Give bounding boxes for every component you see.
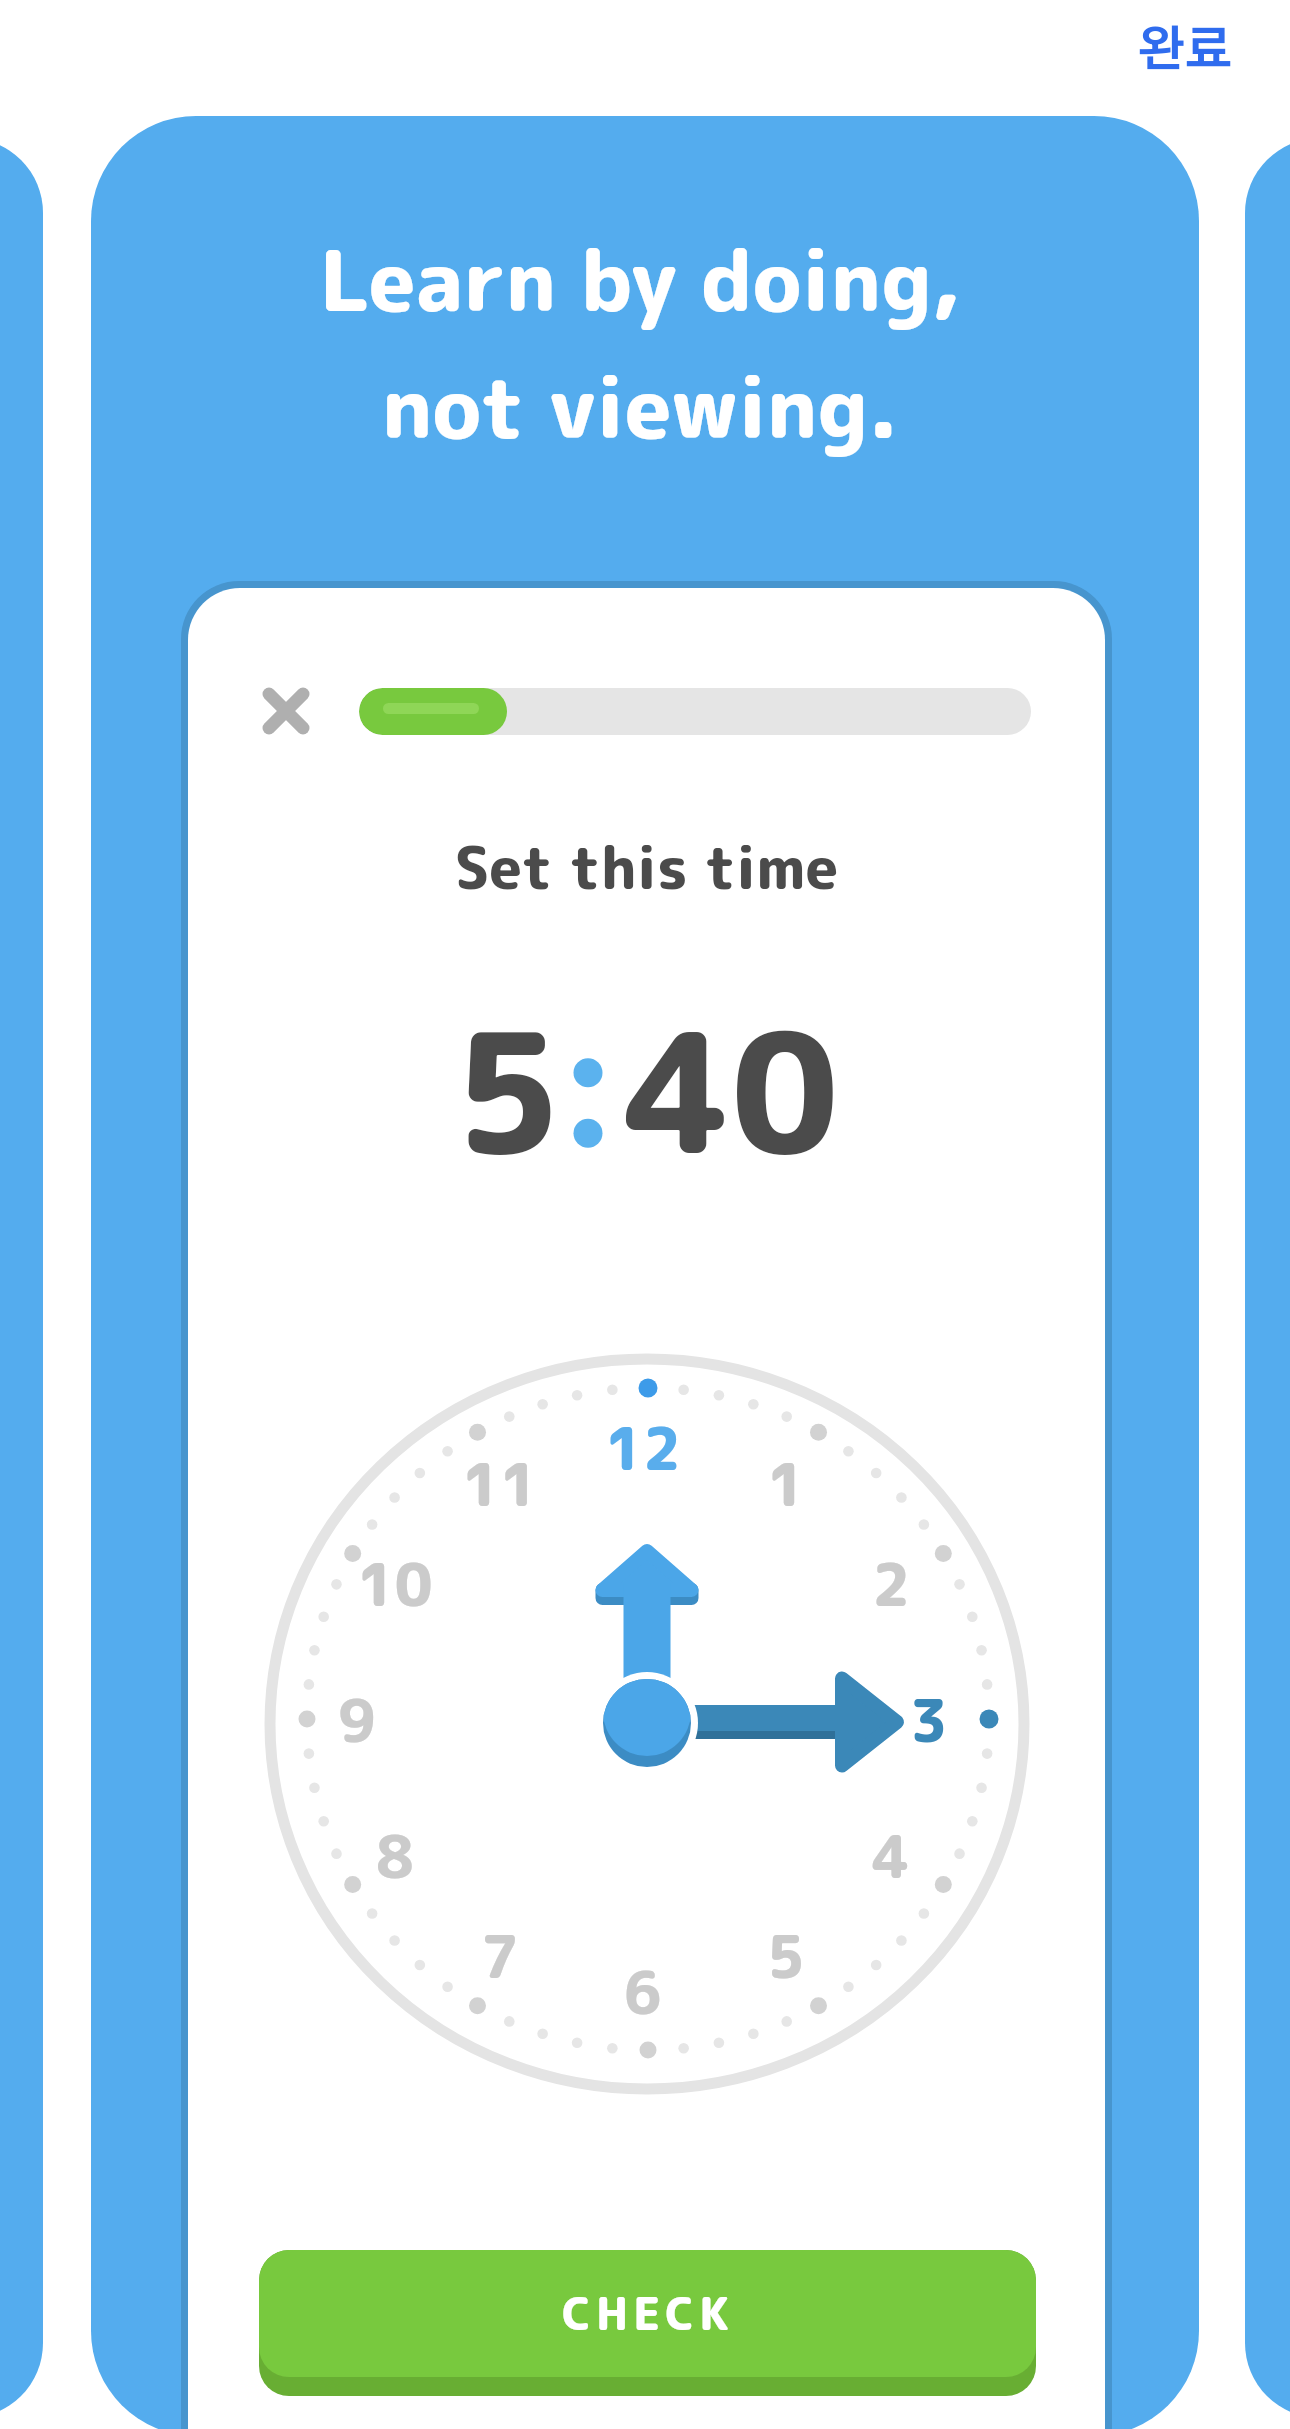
staticText: 1	[767, 1444, 805, 1525]
staticText: 40	[624, 976, 839, 1206]
staticText: 5	[454, 976, 562, 1206]
staticText: 5	[767, 1916, 805, 1997]
staticText: Set this time	[188, 827, 1105, 908]
staticText: 완료	[1137, 28, 1233, 76]
staticText: 6	[624, 1952, 662, 2033]
staticText: 3	[910, 1680, 948, 1761]
staticText: 7	[481, 1916, 519, 1997]
staticText: 8	[376, 1816, 414, 1897]
button[interactable]: CHECK	[259, 2250, 1036, 2396]
staticText: 11	[462, 1444, 538, 1525]
staticText: 12	[605, 1408, 681, 1489]
staticText: 10	[357, 1544, 433, 1625]
staticText: 9	[338, 1680, 376, 1761]
button[interactable]: Close lesson	[250, 675, 322, 747]
button[interactable]: 완료	[1105, 4, 1265, 100]
staticText: Learn by doing, not viewing.	[91, 222, 1194, 464]
staticText: 4	[872, 1816, 910, 1897]
staticText: 2	[872, 1544, 910, 1625]
button[interactable]: Clock face, drag the hands to set the ti…	[252, 1329, 1042, 2119]
staticText: CHECK	[562, 2282, 734, 2345]
